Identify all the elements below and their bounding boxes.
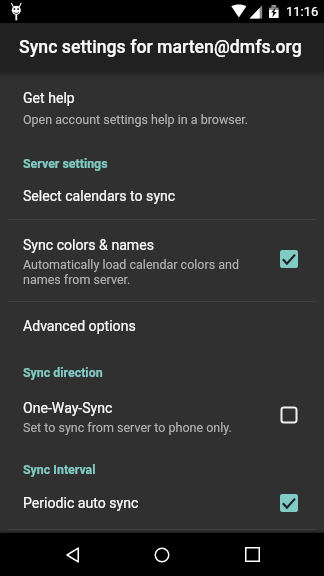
button[interactable]: Sync colors & names: [0, 220, 324, 301]
staticText: Select calendars to sync: [23, 188, 176, 205]
staticText: Open account settings help in a browser.: [23, 112, 249, 127]
staticText: Automatically load calendar colors and n…: [23, 257, 245, 287]
staticText: Periodic auto sync: [23, 495, 139, 512]
staticText: Sync settings for marten@dmfs.org: [19, 37, 302, 58]
button[interactable]: Select calendars to sync: [0, 175, 324, 218]
button[interactable]: Get help: [0, 80, 324, 125]
button[interactable]: Back: [48, 533, 96, 576]
staticText: Advanced options: [23, 318, 136, 335]
staticText: 11:16: [286, 4, 319, 19]
staticText: Sync Interval: [23, 462, 96, 477]
button[interactable]: One-Way-Sync: [0, 388, 324, 443]
button[interactable]: Home: [138, 533, 186, 576]
button[interactable]: Periodic auto sync: [0, 484, 324, 524]
staticText: Sync direction: [23, 365, 103, 380]
staticText: Sync colors & names: [23, 237, 154, 254]
staticText: One-Way-Sync: [23, 400, 113, 417]
staticText: Get help: [23, 90, 75, 107]
staticText: Server settings: [23, 156, 108, 171]
button[interactable]: Recent apps: [228, 533, 276, 576]
button[interactable]: Advanced options: [0, 303, 324, 346]
staticText: Set to sync from server to phone only.: [23, 420, 232, 435]
